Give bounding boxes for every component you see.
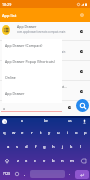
staticText: m <box>70 158 74 164</box>
button[interactable]: . <box>66 168 74 180</box>
button[interactable]: Expand suggestions <box>2 119 7 124</box>
staticText: f <box>35 144 37 150</box>
button[interactable]: c <box>31 154 40 168</box>
staticText: y <box>48 130 51 136</box>
staticText: App list <box>2 13 17 18</box>
staticText: App Drawer <box>5 91 25 96</box>
button[interactable]: i <box>63 126 72 140</box>
staticText: com.appdrawer/onenote.compact.main <box>17 50 66 54</box>
button[interactable]: z <box>13 154 22 168</box>
button[interactable]: Enter <box>75 170 89 179</box>
staticText: 18:29 <box>2 2 12 7</box>
button[interactable]: Voice input <box>82 119 87 124</box>
staticText: i <box>67 130 69 136</box>
button[interactable]: d <box>22 140 31 154</box>
staticText: a <box>3 106 6 111</box>
button[interactable]: w <box>9 126 18 140</box>
button[interactable]: Space <box>30 170 65 178</box>
button[interactable]: , <box>21 168 29 180</box>
staticText: App Drawer <box>17 24 37 29</box>
staticText: h <box>52 144 55 150</box>
staticText: v <box>43 158 46 164</box>
button[interactable]: k <box>67 140 76 154</box>
button[interactable]: t <box>36 126 45 140</box>
button[interactable]: e <box>18 126 27 140</box>
staticText: e <box>21 130 24 136</box>
button[interactable]: m <box>67 154 76 168</box>
button[interactable]: ?123 <box>0 168 13 180</box>
staticText: be <box>44 119 48 123</box>
staticText: a <box>21 119 23 123</box>
button[interactable]: App Drawer Popup (Shortcuts) <box>5 55 62 68</box>
button[interactable]: Emoji <box>13 168 21 180</box>
staticText: App Drawer (Compact) <box>17 44 55 49</box>
staticText: p <box>84 130 87 136</box>
button[interactable]: h <box>49 140 58 154</box>
staticText: us <box>68 119 72 123</box>
button[interactable]: App Drawer Popup <box>0 61 90 81</box>
button[interactable]: App Drawer (Compact) <box>0 41 90 61</box>
staticText: t <box>40 130 42 136</box>
staticText: . <box>69 171 71 177</box>
button[interactable]: y <box>45 126 54 140</box>
staticText: k <box>70 144 73 150</box>
button[interactable]: n <box>58 154 67 168</box>
button[interactable]: p <box>81 126 90 140</box>
button[interactable]: f <box>31 140 40 154</box>
staticText: q <box>3 130 6 136</box>
button[interactable]: Backspace <box>76 154 90 168</box>
staticText: d <box>25 144 28 150</box>
staticText: a <box>7 144 10 150</box>
staticText: j <box>62 144 64 150</box>
button[interactable]: App Drawer <box>0 21 90 41</box>
button[interactable]: Shift <box>0 154 13 168</box>
button[interactable]: a <box>4 140 13 154</box>
button[interactable]: Online <box>5 71 62 84</box>
button[interactable]: s <box>13 140 22 154</box>
staticText: com.appdrawer/onenote.compact.main <box>17 30 66 34</box>
staticText: , <box>24 171 26 177</box>
button[interactable]: j <box>58 140 67 154</box>
staticText: App Drawer Popup (Shortcut... <box>17 84 67 89</box>
button[interactable]: x <box>22 154 31 168</box>
staticText: z <box>17 158 19 164</box>
staticText: r <box>31 130 33 136</box>
button[interactable]: App Drawer <box>5 87 62 100</box>
button[interactable]: r <box>27 126 36 140</box>
staticText: g <box>43 144 46 150</box>
button[interactable]: Search <box>76 99 89 112</box>
staticText: u <box>57 130 60 136</box>
button[interactable]: App Drawer Popup (Shortcut... <box>0 81 90 101</box>
button[interactable]: App Drawer (Compact) <box>5 39 62 52</box>
button[interactable]: b <box>49 154 58 168</box>
button[interactable]: q <box>0 126 9 140</box>
staticText: ?123 <box>3 172 10 176</box>
button[interactable]: g <box>40 140 49 154</box>
button[interactable]: More options <box>78 11 86 19</box>
button[interactable]: l <box>76 140 85 154</box>
staticText: c <box>34 158 37 164</box>
button[interactable]: u <box>54 126 63 140</box>
staticText: x <box>25 158 28 164</box>
staticText: o <box>75 130 78 136</box>
button[interactable]: v <box>40 154 49 168</box>
staticText: App Drawer (Compact) <box>5 43 43 48</box>
staticText: s <box>16 144 19 150</box>
staticText: w <box>12 130 16 136</box>
staticText: Online <box>5 75 16 80</box>
staticText: b <box>52 158 55 164</box>
staticText: App Drawer Popup (Shortcuts) <box>5 59 55 64</box>
button[interactable]: o <box>72 126 81 140</box>
staticText: com.appdrawer/shortcut.content <box>17 90 58 94</box>
staticText: l <box>80 144 82 150</box>
staticText: n <box>61 158 64 164</box>
